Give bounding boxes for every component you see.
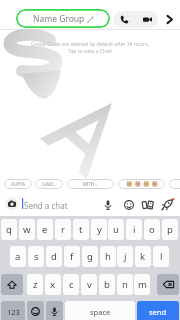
button[interactable]: l (153, 246, 169, 267)
button[interactable]: h (100, 246, 116, 267)
staticText: c (69, 278, 74, 291)
button[interactable]: r (55, 219, 71, 240)
button[interactable]: k (135, 246, 151, 267)
staticText: p (167, 223, 173, 236)
button[interactable] (169, 179, 180, 189)
button[interactable]: MITH... (67, 179, 114, 189)
staticText: MITH... (83, 181, 99, 187)
staticText: l (160, 250, 163, 263)
button[interactable]: y (91, 219, 107, 240)
staticText: LIAM... (42, 181, 57, 187)
staticText: m (138, 278, 147, 291)
button[interactable]: a (10, 246, 26, 267)
staticText: g (87, 250, 93, 263)
staticText: s (34, 250, 39, 263)
staticText: y (97, 223, 102, 236)
button[interactable]: m (134, 274, 150, 295)
staticText: w (23, 223, 31, 236)
staticText: Group Chats are deleted by default after… (0, 41, 180, 55)
button[interactable]: t (73, 219, 89, 240)
staticText: d (51, 250, 57, 263)
button[interactable]: e (37, 219, 53, 240)
button[interactable]: u (108, 219, 124, 240)
button[interactable]: q (1, 219, 17, 240)
button[interactable]: v (81, 274, 97, 295)
button[interactable]: Voice note (99, 196, 116, 213)
staticText: r (61, 223, 65, 236)
button[interactable]: Camera (5, 197, 18, 210)
staticText: j (124, 250, 127, 263)
button[interactable]: w (19, 219, 35, 240)
button[interactable]: LIAM... (35, 179, 63, 189)
staticText: f (70, 250, 74, 263)
button[interactable]: i (126, 219, 142, 240)
staticText: h (105, 250, 111, 263)
staticText: b (104, 278, 110, 291)
staticText: space (90, 307, 111, 317)
staticText: 123 (7, 307, 20, 317)
button[interactable]: d (46, 246, 62, 267)
staticText: Name Group (33, 13, 85, 25)
button[interactable]: g (82, 246, 98, 267)
button[interactable]: c (63, 274, 79, 295)
button[interactable]: Send (159, 196, 176, 213)
staticText: Send a chat (24, 200, 68, 211)
button[interactable]: Stickers (139, 196, 156, 213)
staticText: n (122, 278, 128, 291)
button[interactable]: Dictation (46, 301, 63, 320)
staticText: k (140, 250, 146, 263)
button[interactable]: 123 (1, 301, 25, 320)
button[interactable]: j (117, 246, 133, 267)
button[interactable] (118, 179, 165, 189)
staticText: o (149, 223, 155, 236)
button[interactable]: Emoji (120, 196, 137, 213)
button[interactable]: Open group profile (161, 11, 178, 28)
button[interactable]: Shift (1, 274, 23, 295)
staticText: z (33, 278, 38, 291)
staticText: i (133, 223, 136, 236)
staticText: send (149, 307, 167, 317)
button[interactable]: space (65, 301, 135, 320)
staticText: e (42, 223, 48, 236)
button[interactable]: z (27, 274, 43, 295)
staticText: t (79, 223, 83, 236)
button[interactable]: Name Group (16, 9, 110, 28)
button[interactable]: Backspace (157, 274, 179, 295)
button[interactable]: Video call (139, 11, 156, 28)
staticText: a (15, 250, 21, 263)
button[interactable]: o (144, 219, 160, 240)
button[interactable]: n (117, 274, 133, 295)
button[interactable]: Emoji keyboard (27, 301, 44, 320)
staticText: x (50, 278, 56, 291)
staticText: v (87, 278, 92, 291)
button[interactable]: s (28, 246, 44, 267)
button[interactable]: b (99, 274, 115, 295)
button[interactable]: ALPHA (4, 179, 32, 189)
button[interactable]: x (45, 274, 61, 295)
button[interactable]: send (137, 301, 179, 320)
button[interactable]: p (162, 219, 178, 240)
staticText: ALPHA (11, 181, 26, 187)
staticText: q (6, 223, 12, 236)
staticText: u (113, 223, 119, 236)
button[interactable]: f (64, 246, 80, 267)
button[interactable]: Call (116, 11, 133, 28)
